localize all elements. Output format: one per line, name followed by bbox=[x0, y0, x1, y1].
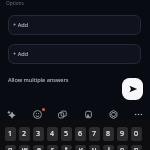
button[interactable]: GIF bbox=[53, 106, 71, 122]
staticText: Options bbox=[6, 0, 24, 7]
button[interactable]: q bbox=[5, 145, 16, 150]
button[interactable]: w bbox=[19, 145, 30, 150]
staticText: + Add bbox=[13, 21, 29, 29]
button[interactable]: 8 bbox=[103, 127, 114, 141]
button[interactable]: 9 bbox=[117, 127, 128, 141]
staticText: e bbox=[37, 145, 41, 150]
button[interactable]: p bbox=[131, 145, 142, 150]
button[interactable]: Emoji bbox=[28, 106, 46, 122]
staticText: u bbox=[92, 145, 97, 150]
button[interactable]: 4 bbox=[47, 127, 58, 141]
button[interactable]: e bbox=[33, 145, 44, 150]
staticText: 0 bbox=[134, 129, 139, 139]
button[interactable]: r bbox=[47, 145, 58, 150]
button[interactable]: t bbox=[61, 145, 72, 150]
staticText: t bbox=[65, 145, 68, 150]
staticText: + Add bbox=[13, 50, 29, 58]
button[interactable]: Gallery bbox=[79, 106, 97, 122]
staticText: p bbox=[134, 145, 139, 150]
button[interactable]: 2 bbox=[19, 127, 30, 141]
staticText: 3 bbox=[36, 129, 41, 139]
staticText: 1 bbox=[8, 129, 13, 139]
staticText: 2 bbox=[22, 129, 27, 139]
staticText: i bbox=[108, 145, 110, 150]
button[interactable]: + Add bbox=[8, 44, 141, 64]
staticText: o bbox=[120, 145, 125, 150]
staticText: 9 bbox=[120, 129, 125, 139]
button[interactable]: Stickers bbox=[2, 106, 20, 122]
button[interactable]: More options bbox=[129, 106, 147, 122]
staticText: Allow multiple answers bbox=[8, 76, 69, 84]
staticText: 6 bbox=[78, 129, 83, 139]
staticText: 5 bbox=[64, 129, 69, 139]
button[interactable]: 7 bbox=[89, 127, 100, 141]
staticText: 8 bbox=[106, 129, 111, 139]
staticText: w bbox=[22, 145, 28, 150]
button[interactable]: + Add bbox=[8, 15, 141, 35]
button[interactable]: Assistant bbox=[104, 106, 122, 122]
staticText: y bbox=[79, 145, 83, 150]
button[interactable]: u bbox=[89, 145, 100, 150]
button[interactable]: 6 bbox=[75, 127, 86, 141]
staticText: r bbox=[51, 145, 54, 150]
button[interactable]: 3 bbox=[33, 127, 44, 141]
button[interactable]: 5 bbox=[61, 127, 72, 141]
button[interactable]: 1 bbox=[5, 127, 16, 141]
staticText: 7 bbox=[92, 129, 97, 139]
button[interactable]: y bbox=[75, 145, 86, 150]
button[interactable]: i bbox=[103, 145, 114, 150]
button[interactable]: o bbox=[117, 145, 128, 150]
button[interactable]: Send bbox=[122, 78, 143, 100]
button[interactable]: 0 bbox=[131, 127, 142, 141]
staticText: q bbox=[8, 145, 13, 150]
staticText: 4 bbox=[50, 129, 55, 139]
